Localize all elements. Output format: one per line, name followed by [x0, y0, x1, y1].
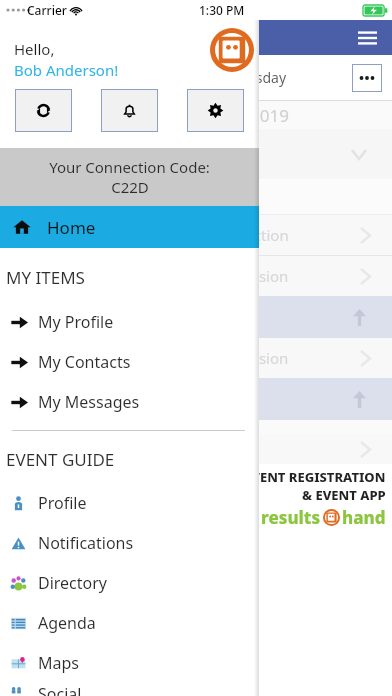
staticText: Auction	[235, 225, 289, 245]
staticText: Hello,	[14, 39, 55, 59]
staticText: C22D	[111, 177, 149, 197]
staticText: hand	[342, 506, 386, 529]
staticText: EVENT REGISTRATION	[244, 468, 386, 486]
staticText: results	[261, 506, 321, 529]
button[interactable]: Profile	[0, 483, 259, 523]
staticText: Directory	[38, 572, 108, 594]
staticText: EVENT GUIDE	[6, 448, 115, 471]
staticText: MY ITEMS	[6, 266, 85, 289]
staticText: Session	[235, 348, 289, 368]
button[interactable]: Menu	[354, 25, 380, 51]
staticText: My Contacts	[38, 351, 131, 373]
staticText: Home	[47, 216, 96, 239]
button[interactable]: My Contacts	[0, 342, 259, 382]
button[interactable]: Directory	[0, 563, 259, 603]
button[interactable]: My Messages	[0, 382, 259, 422]
staticText: Carrier	[27, 2, 67, 18]
staticText: Profile	[38, 492, 87, 514]
staticText: Notifications	[38, 532, 134, 554]
staticText: Wednesday	[210, 68, 287, 87]
button[interactable]: My Profile	[0, 302, 259, 342]
button[interactable]: Maps	[0, 643, 259, 683]
staticText: Social	[38, 683, 82, 696]
staticText: Bob Anderson!	[14, 60, 119, 80]
button[interactable]: Notifications	[0, 523, 259, 563]
staticText: 2019	[250, 104, 289, 127]
staticText: 1:30 PM	[199, 2, 245, 18]
staticText: Your Connection Code:	[49, 157, 210, 177]
staticText: & EVENT APP	[302, 486, 386, 504]
button[interactable]: Social	[0, 683, 259, 696]
button[interactable]: Agenda	[0, 603, 259, 643]
button[interactable]: Home	[0, 206, 259, 248]
staticText: Session	[235, 266, 289, 286]
staticText: Maps	[38, 652, 79, 674]
button[interactable]: Notifications	[101, 89, 158, 132]
button[interactable]: More options	[352, 64, 382, 92]
staticText: My Profile	[38, 311, 114, 333]
staticText: My Messages	[38, 391, 140, 413]
button[interactable]: Settings	[187, 89, 244, 132]
staticText: Agenda	[38, 612, 96, 634]
button[interactable]: Refresh	[15, 89, 72, 132]
